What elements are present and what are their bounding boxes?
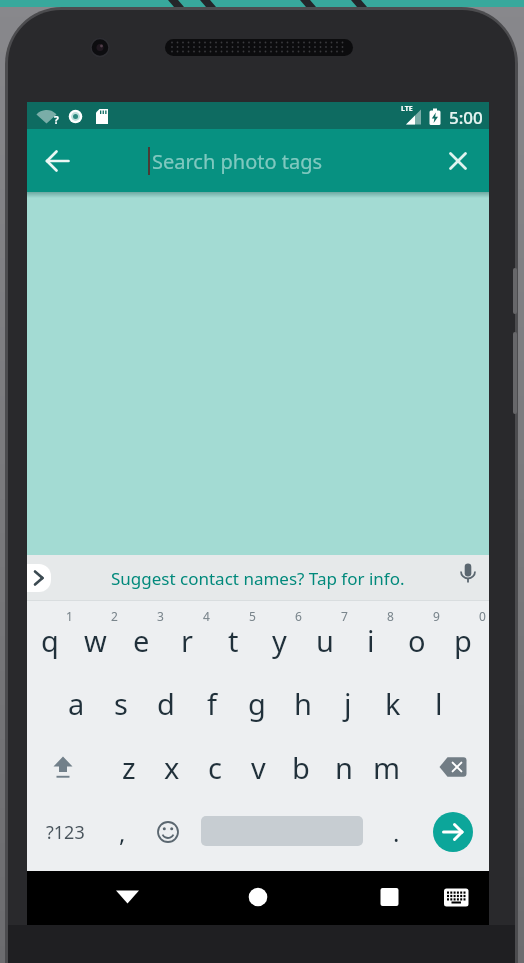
button[interactable] — [366, 873, 414, 921]
staticText: q — [41, 621, 59, 660]
button[interactable] — [40, 745, 84, 789]
staticText: 8 — [387, 608, 394, 624]
staticText: 1 — [66, 608, 73, 624]
staticText: t — [228, 621, 239, 660]
staticText: v — [251, 748, 266, 787]
button[interactable] — [433, 812, 473, 852]
button[interactable] — [40, 810, 88, 854]
button[interactable]: w — [73, 618, 117, 662]
button[interactable] — [148, 810, 188, 854]
button[interactable]: j — [326, 681, 370, 725]
button[interactable]: d — [144, 681, 188, 725]
staticText: Suggest contact names? Tap for info. — [111, 567, 405, 590]
button[interactable]: l — [417, 681, 461, 725]
staticText: b — [292, 748, 310, 787]
button[interactable]: e — [119, 618, 163, 662]
button[interactable] — [425, 745, 469, 789]
staticText: 9 — [433, 608, 440, 624]
button[interactable]: s — [99, 681, 143, 725]
button[interactable] — [234, 873, 282, 921]
button[interactable]: a — [54, 681, 98, 725]
staticText: e — [133, 621, 150, 660]
button[interactable] — [38, 142, 78, 182]
button[interactable]: ?123 — [40, 818, 90, 846]
staticText: k — [385, 684, 401, 723]
button[interactable]: m — [365, 745, 409, 789]
staticText: Search photo tags — [152, 148, 323, 175]
staticText: ? — [54, 113, 59, 125]
button[interactable]: o — [395, 618, 439, 662]
staticText: i — [367, 621, 375, 660]
button[interactable]: f — [190, 681, 234, 725]
button[interactable] — [432, 873, 480, 921]
button[interactable]: q — [28, 618, 72, 662]
button[interactable]: g — [235, 681, 279, 725]
button[interactable]: b — [279, 745, 323, 789]
staticText: o — [408, 621, 426, 660]
button[interactable] — [438, 141, 478, 181]
staticText: 5:00 — [449, 106, 483, 128]
button[interactable]: v — [236, 745, 280, 789]
button[interactable]: t — [211, 618, 255, 662]
staticText: LTE — [401, 104, 413, 114]
button[interactable] — [448, 556, 488, 600]
staticText: y — [272, 621, 287, 660]
button[interactable]: . — [382, 814, 410, 850]
staticText: , — [119, 816, 126, 849]
staticText: 2 — [111, 608, 118, 624]
staticText: r — [181, 621, 193, 660]
button[interactable]: z — [107, 745, 151, 789]
staticText: f — [207, 684, 217, 723]
button[interactable] — [103, 873, 151, 921]
button[interactable] — [27, 564, 51, 592]
staticText: g — [248, 684, 266, 723]
button[interactable]: u — [303, 618, 347, 662]
staticText: ?123 — [46, 820, 85, 845]
button[interactable]: x — [150, 745, 194, 789]
staticText: 5 — [249, 608, 256, 624]
button[interactable]: p — [441, 618, 485, 662]
staticText: 0 — [479, 608, 486, 624]
staticText: x — [164, 748, 180, 787]
button[interactable]: c — [193, 745, 237, 789]
staticText: 3 — [157, 608, 164, 624]
staticText: u — [316, 621, 334, 660]
staticText: n — [335, 748, 353, 787]
staticText: z — [122, 748, 136, 787]
button[interactable] — [100, 556, 420, 600]
staticText: s — [114, 684, 128, 723]
staticText: d — [157, 684, 175, 723]
staticText: h — [294, 684, 312, 723]
button[interactable]: k — [371, 681, 415, 725]
button[interactable]: , — [108, 814, 136, 850]
staticText: c — [208, 748, 222, 787]
staticText: p — [454, 621, 472, 660]
staticText: j — [344, 684, 352, 723]
button[interactable]: Suggest contact names? Tap for info. — [78, 565, 438, 591]
staticText: a — [68, 684, 85, 723]
staticText: 6 — [295, 608, 302, 624]
staticText: w — [84, 621, 107, 660]
staticText: m — [373, 748, 401, 787]
button[interactable]: y — [257, 618, 301, 662]
button[interactable]: n — [322, 745, 366, 789]
button[interactable]: r — [165, 618, 209, 662]
staticText: 7 — [341, 608, 348, 624]
staticText: 4 — [203, 608, 210, 624]
button[interactable]: h — [281, 681, 325, 725]
button[interactable]: i — [349, 618, 393, 662]
staticText: l — [435, 684, 443, 723]
staticText: . — [393, 816, 400, 849]
